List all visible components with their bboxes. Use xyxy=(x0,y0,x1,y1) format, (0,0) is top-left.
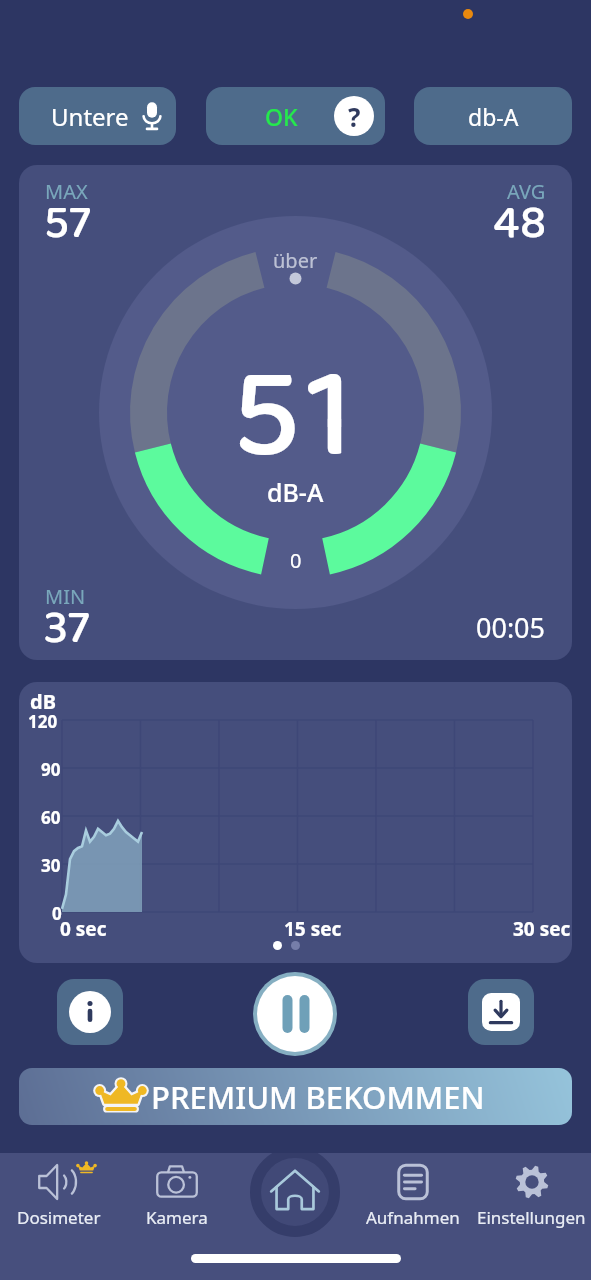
staticText: PREMIUM BEKOMMEN xyxy=(151,1076,485,1118)
button[interactable]: Einstellungen xyxy=(472,1153,591,1241)
staticText: 60 xyxy=(41,806,61,829)
staticText: Einstellungen xyxy=(477,1206,586,1229)
button[interactable]: Aufnahmen xyxy=(354,1153,472,1241)
staticText: 30 xyxy=(41,854,61,877)
staticText: Untere xyxy=(51,100,129,133)
staticText: dB xyxy=(30,688,56,715)
staticText: Dosimeter xyxy=(17,1206,101,1229)
button[interactable]: Pause xyxy=(253,972,337,1056)
staticText: 37 xyxy=(44,591,90,660)
staticText: Aufnahmen xyxy=(366,1206,460,1229)
staticText: 30 sec xyxy=(513,916,571,942)
staticText: 0 sec xyxy=(60,916,107,942)
button[interactable]: PREMIUM BEKOMMEN xyxy=(19,1068,572,1125)
staticText: MAX xyxy=(45,178,88,205)
staticText: 51 xyxy=(232,315,360,520)
button[interactable]: Dosimeter xyxy=(0,1153,118,1241)
staticText: 48 xyxy=(493,186,547,261)
staticText: MIN xyxy=(45,583,86,610)
staticText: OK xyxy=(265,101,298,132)
staticText: dB-A xyxy=(267,475,324,509)
staticText: AVG xyxy=(507,178,546,205)
button[interactable]: Download xyxy=(468,979,534,1045)
button[interactable]: Home xyxy=(250,1153,340,1235)
staticText: Kamera xyxy=(146,1206,208,1229)
button[interactable]: Kamera xyxy=(118,1153,236,1241)
staticText: ? xyxy=(348,99,361,134)
staticText: 90 xyxy=(41,758,61,781)
button[interactable]: Info xyxy=(57,979,123,1045)
staticText: 0 xyxy=(52,902,62,925)
staticText: 00:05 xyxy=(476,609,546,646)
staticText: 120 xyxy=(28,710,58,733)
staticText: db-A xyxy=(468,101,519,132)
button[interactable]: Untere xyxy=(19,87,176,145)
staticText: 15 sec xyxy=(284,916,342,942)
button[interactable]: db-A xyxy=(414,87,572,145)
staticText: 0 xyxy=(290,547,302,574)
staticText: über xyxy=(273,247,318,274)
button[interactable]: OK xyxy=(206,87,385,145)
staticText: 57 xyxy=(44,186,91,261)
